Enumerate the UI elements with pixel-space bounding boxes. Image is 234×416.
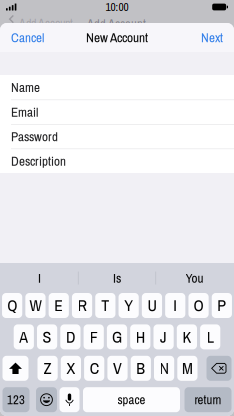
button[interactable]: V xyxy=(107,356,128,381)
staticText: H xyxy=(136,326,145,348)
staticText: G xyxy=(112,326,122,348)
button[interactable]: S xyxy=(37,324,57,349)
staticText: K xyxy=(182,326,191,348)
button[interactable]: X xyxy=(61,356,81,381)
staticText: Name xyxy=(11,78,40,96)
staticText: F xyxy=(90,326,98,348)
button[interactable]: I xyxy=(1,264,78,291)
staticText: B xyxy=(136,357,145,379)
button[interactable]: A xyxy=(14,324,34,349)
button[interactable]: return xyxy=(184,387,231,412)
staticText: 10:00 xyxy=(105,0,128,15)
staticText: E xyxy=(54,295,63,316)
button[interactable]: Q xyxy=(2,293,22,318)
button[interactable]: R xyxy=(72,293,92,318)
staticText: return xyxy=(194,391,221,408)
button[interactable]: Emoji xyxy=(36,387,57,412)
staticText: D xyxy=(66,326,75,348)
button[interactable]: Password xyxy=(0,124,234,148)
staticText: X xyxy=(66,357,75,379)
staticText: Password xyxy=(11,128,58,145)
button[interactable]: 123 xyxy=(2,387,29,412)
staticText: S xyxy=(43,326,52,348)
button[interactable]: Cancel xyxy=(8,25,47,50)
button[interactable]: U xyxy=(142,293,162,318)
staticText: C xyxy=(90,357,99,379)
staticText: Add Account xyxy=(19,15,73,32)
button[interactable]: W xyxy=(25,293,46,318)
staticText: A xyxy=(19,326,28,348)
staticText: Q xyxy=(7,295,17,316)
button[interactable]: T xyxy=(95,293,115,318)
button[interactable]: Dictation xyxy=(59,387,79,412)
staticText: Is xyxy=(113,269,121,287)
button[interactable]: You xyxy=(156,264,233,291)
staticText: Y xyxy=(124,295,133,316)
button[interactable]: N xyxy=(154,356,174,381)
staticText: U xyxy=(147,295,156,316)
button[interactable]: E xyxy=(49,293,69,318)
button[interactable]: Next xyxy=(198,25,226,50)
button[interactable]: space xyxy=(83,387,180,412)
button[interactable]: Is xyxy=(78,264,155,291)
staticText: Email xyxy=(11,103,38,121)
staticText: L xyxy=(207,326,214,348)
button[interactable]: Y xyxy=(119,293,139,318)
staticText: You xyxy=(186,269,204,287)
staticText: R xyxy=(78,295,87,316)
button[interactable]: L xyxy=(200,324,220,349)
staticText: M xyxy=(182,357,193,379)
staticText: V xyxy=(113,357,122,379)
button[interactable]: H xyxy=(130,324,150,349)
staticText: T xyxy=(101,295,109,316)
button[interactable]: G xyxy=(107,324,127,349)
staticText: space xyxy=(117,391,145,408)
staticText: New Account xyxy=(86,28,148,46)
button[interactable]: I xyxy=(165,293,185,318)
button[interactable]: D xyxy=(60,324,80,349)
button[interactable]: J xyxy=(153,324,174,349)
button[interactable]: K xyxy=(177,324,197,349)
staticText: Z xyxy=(44,357,52,379)
button[interactable]: Email xyxy=(0,99,234,124)
button[interactable]: F xyxy=(84,324,104,349)
button[interactable]: C xyxy=(84,356,104,381)
button[interactable]: P xyxy=(212,293,232,318)
button[interactable]: Z xyxy=(37,356,58,381)
button[interactable]: Delete xyxy=(206,356,231,381)
staticText: I xyxy=(173,295,177,316)
staticText: Cancel xyxy=(11,29,44,46)
staticText: W xyxy=(29,295,41,316)
staticText: Description xyxy=(11,152,66,170)
button[interactable]: Shift xyxy=(2,356,28,381)
staticText: 123 xyxy=(7,391,25,408)
button[interactable]: O xyxy=(188,293,209,318)
staticText: J xyxy=(160,326,167,348)
button[interactable]: M xyxy=(177,356,197,381)
staticText: Next xyxy=(201,29,223,46)
staticText: P xyxy=(217,295,226,316)
button[interactable]: Description xyxy=(0,148,234,173)
staticText: I xyxy=(38,269,41,287)
staticText: O xyxy=(194,295,204,316)
staticText: N xyxy=(160,357,169,379)
button[interactable]: Name xyxy=(0,75,234,99)
staticText: Add Account xyxy=(87,15,146,32)
button[interactable]: B xyxy=(131,356,151,381)
